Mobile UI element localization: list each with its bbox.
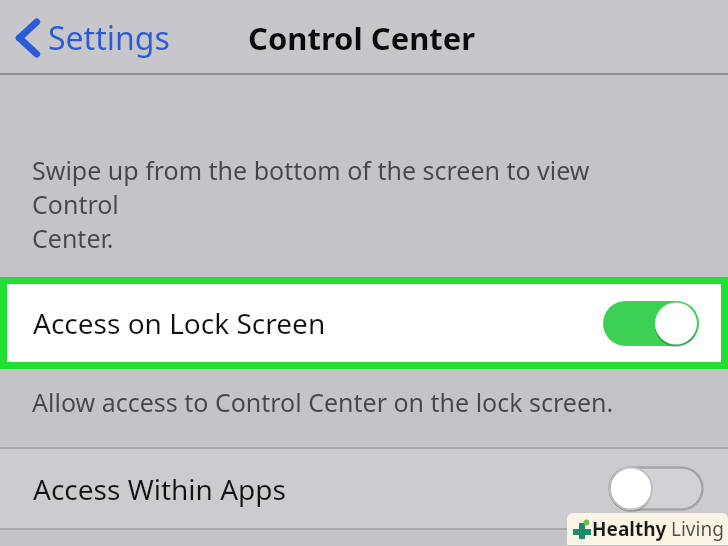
staticText: Settings <box>48 16 170 60</box>
staticText: Control Center <box>248 17 476 59</box>
staticText: Access on Lock Screen <box>33 304 326 342</box>
staticText: Healthy <box>592 516 667 542</box>
button[interactable]: Access on Lock Screen toggle, on <box>603 301 699 346</box>
button[interactable]: Access Within Apps toggle, off <box>608 466 704 511</box>
button[interactable]: Access Within Apps <box>0 447 728 530</box>
staticText: Swipe up from the bottom of the screen t… <box>32 153 668 255</box>
staticText: Allow access to Control Center within ap… <box>32 542 633 546</box>
staticText: Living <box>671 516 724 542</box>
button[interactable]: Settings <box>12 10 174 66</box>
staticText: Access Within Apps <box>33 470 286 508</box>
button[interactable]: Access on Lock Screen <box>7 284 721 362</box>
staticText: Allow access to Control Center on the lo… <box>32 385 614 419</box>
